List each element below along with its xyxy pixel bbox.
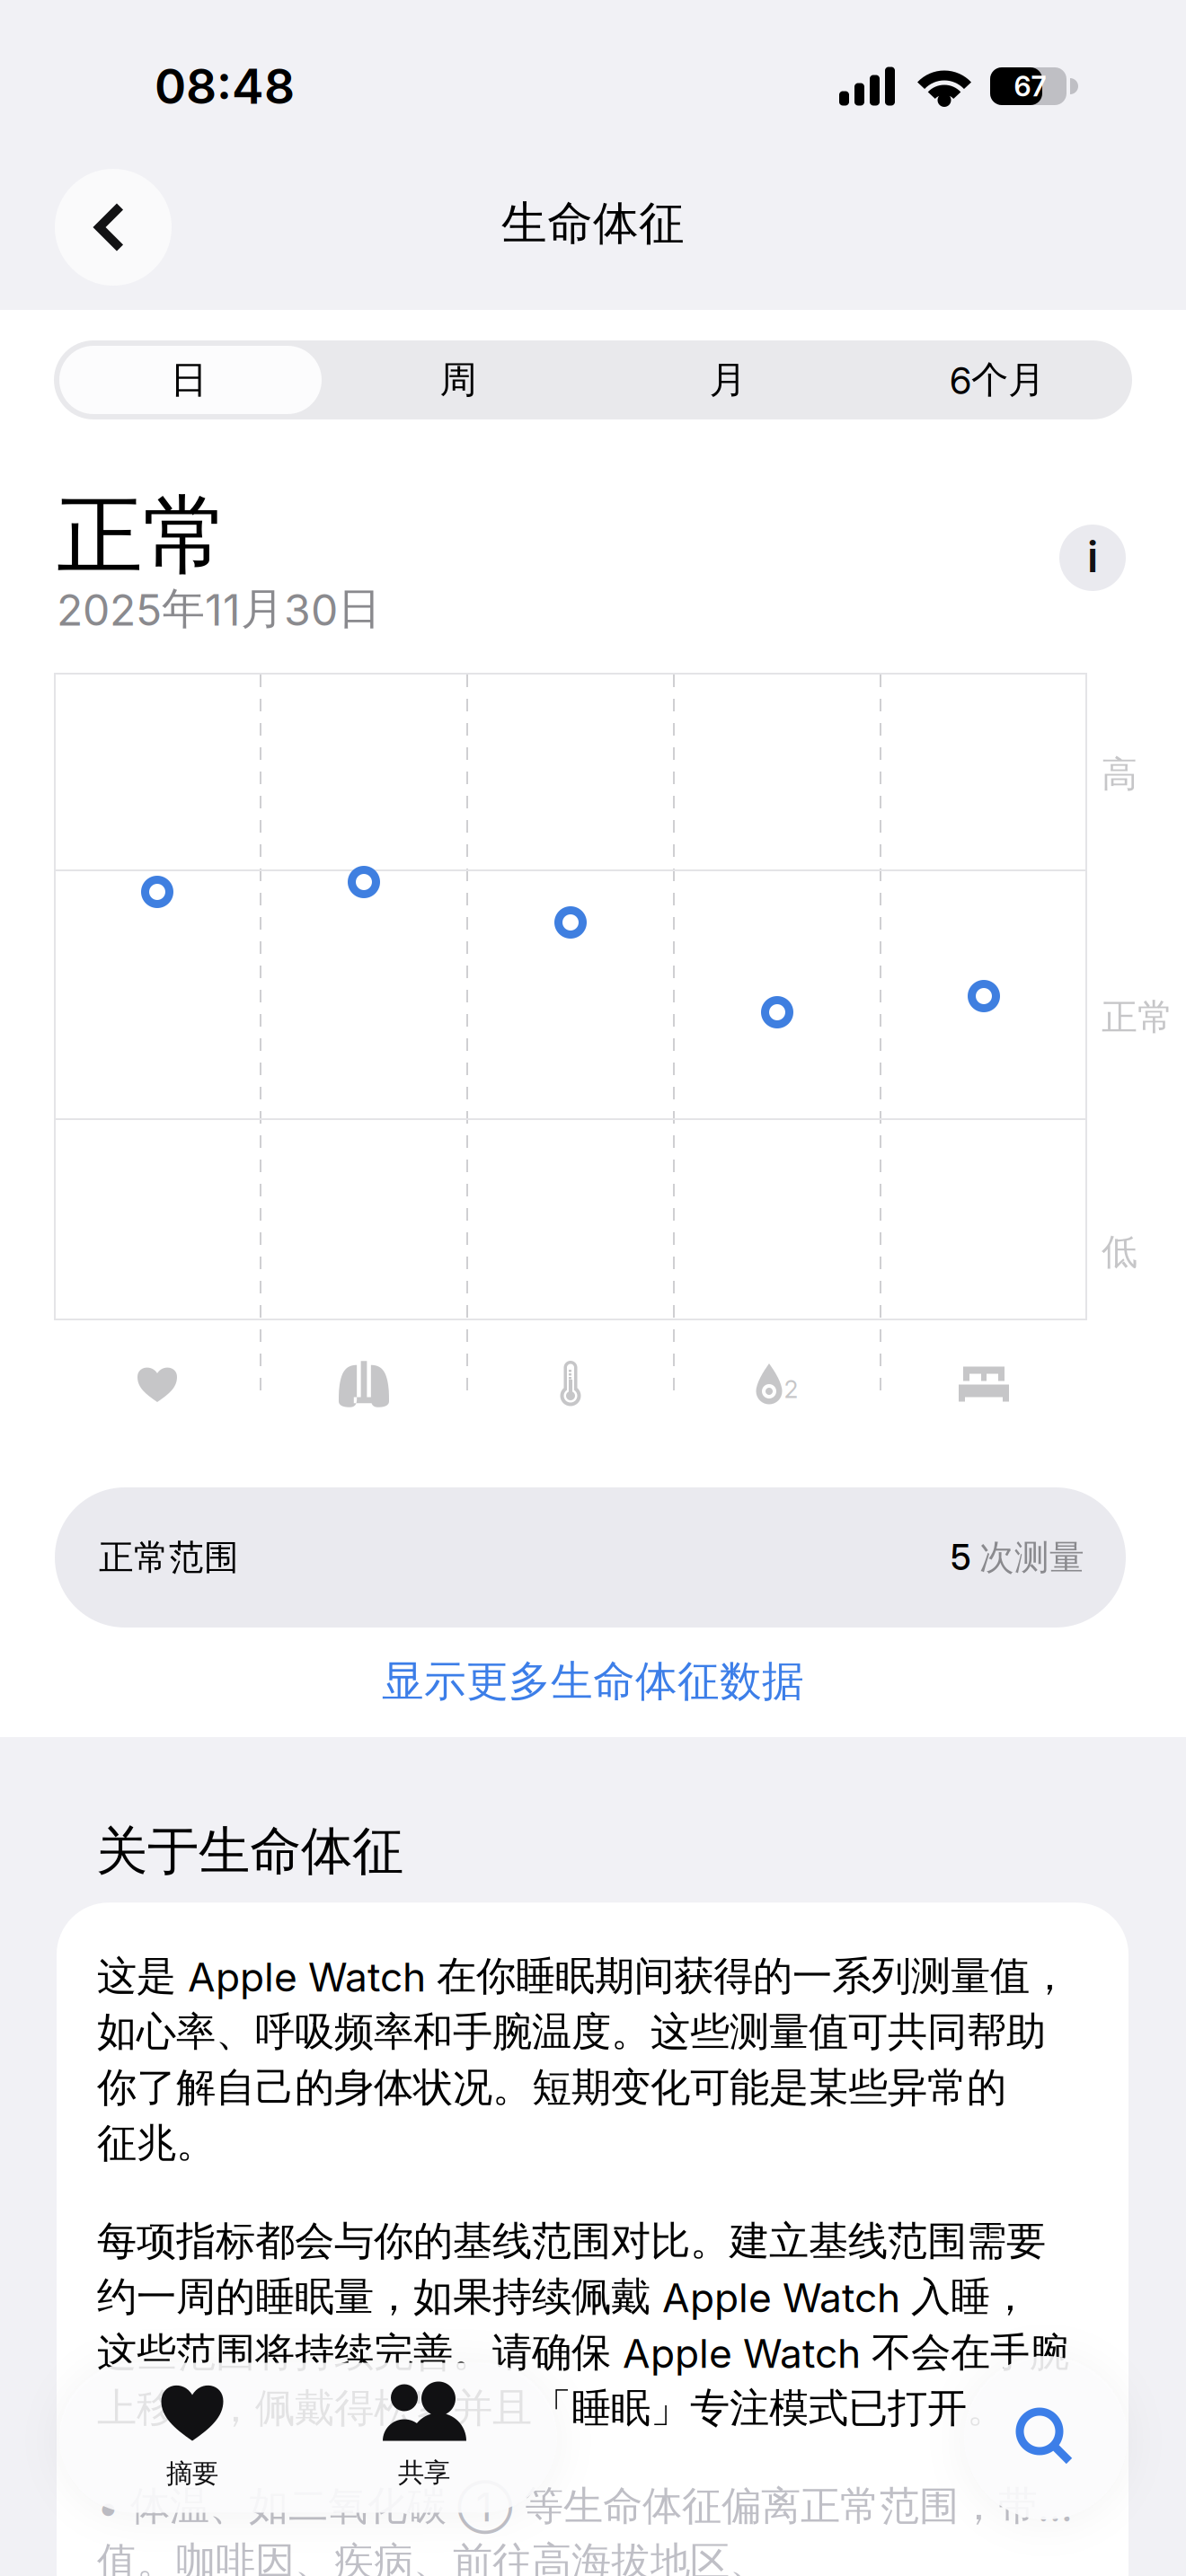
staticText: 如心率、呼吸频率和手腕温度。这些测量值可共同帮助 — [97, 2007, 1046, 2057]
button[interactable]: 显示更多生命体征数据 — [346, 1640, 840, 1723]
staticText: 67 — [1014, 70, 1046, 103]
staticText: 值。咖啡因、疾病、前往高海拔地区、 — [97, 2537, 769, 2576]
staticText: 上移动，佩戴得松紧并且「睡眠」专注模式已打开。 — [97, 2383, 1006, 2433]
staticText: 正常 — [57, 482, 229, 590]
button[interactable]: 更多信息 — [1059, 525, 1126, 591]
staticText: 2025年11月30日 — [57, 582, 381, 636]
button[interactable]: 周 — [323, 340, 593, 419]
staticText: 摘要 — [166, 2457, 218, 2490]
staticText: 高 — [1102, 752, 1137, 797]
staticText: 低 — [1102, 1229, 1137, 1275]
button[interactable]: 共享 — [308, 2363, 540, 2513]
staticText: 生命体征 — [501, 195, 685, 252]
staticText: 5 — [951, 1536, 979, 1578]
button[interactable]: 月 — [593, 340, 863, 419]
button[interactable]: 摘要 — [76, 2363, 308, 2513]
button[interactable]: 正常范围 — [55, 1487, 1126, 1628]
staticText: 正常 — [1102, 995, 1173, 1040]
staticText: 约一周的睡眠量，如果持续佩戴 Apple Watch 入睡， — [97, 2272, 1030, 2322]
staticText: 正常范围 — [99, 1536, 239, 1579]
staticText: 显示更多生命体征数据 — [382, 1655, 804, 1708]
staticText: 2 — [784, 1375, 798, 1404]
staticText: 这是 Apple Watch 在你睡眠期间获得的一系列测量值， — [97, 1951, 1069, 2001]
staticText: 周 — [440, 357, 477, 403]
button[interactable]: 返回 — [55, 169, 172, 286]
staticText: 共享 — [398, 2456, 450, 2489]
button[interactable]: 日 — [54, 340, 323, 419]
button[interactable]: 搜索 — [964, 2356, 1128, 2519]
staticText: 08:48 — [155, 57, 295, 115]
staticText: 月 — [709, 357, 746, 403]
staticText: 关于生命体征 — [96, 1819, 403, 1884]
staticText: 你了解自己的身体状况。短期变化可能是某些异常的 — [97, 2063, 1006, 2113]
staticText: 次测量 — [979, 1536, 1084, 1579]
staticText: • 体温、如二氧化碳 ① 等生命体征偏离正常范围，带来异 — [97, 2481, 1102, 2531]
button[interactable]: 6个月 — [863, 340, 1132, 419]
staticText: 每项指标都会与你的基线范围对比。建立基线范围需要 — [97, 2216, 1046, 2266]
staticText: 这些范围将持续完善。请确保 Apple Watch 不会在手腕 — [97, 2327, 1069, 2378]
staticText: 征兆。 — [97, 2118, 216, 2168]
staticText: 日 — [170, 357, 207, 403]
staticText: 6个月 — [950, 357, 1045, 403]
staticText: i — [1087, 532, 1098, 582]
